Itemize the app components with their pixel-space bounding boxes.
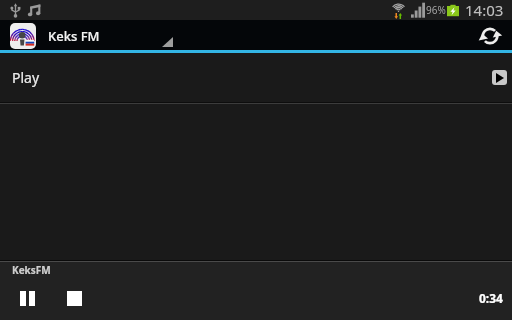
staticText: Keks FM — [48, 27, 100, 45]
staticText: 96% — [426, 3, 446, 17]
button[interactable]: Refresh — [472, 21, 508, 50]
button[interactable]: Stop — [61, 289, 87, 307]
button[interactable]: Pause — [14, 289, 40, 307]
staticText: Play — [12, 68, 40, 87]
staticText: KeksFM — [12, 263, 51, 277]
button[interactable]: Keks FM — [0, 21, 184, 50]
staticText: 14:03 — [465, 0, 504, 20]
button[interactable]: Play — [0, 53, 512, 102]
staticText: 0:34 — [479, 290, 503, 306]
